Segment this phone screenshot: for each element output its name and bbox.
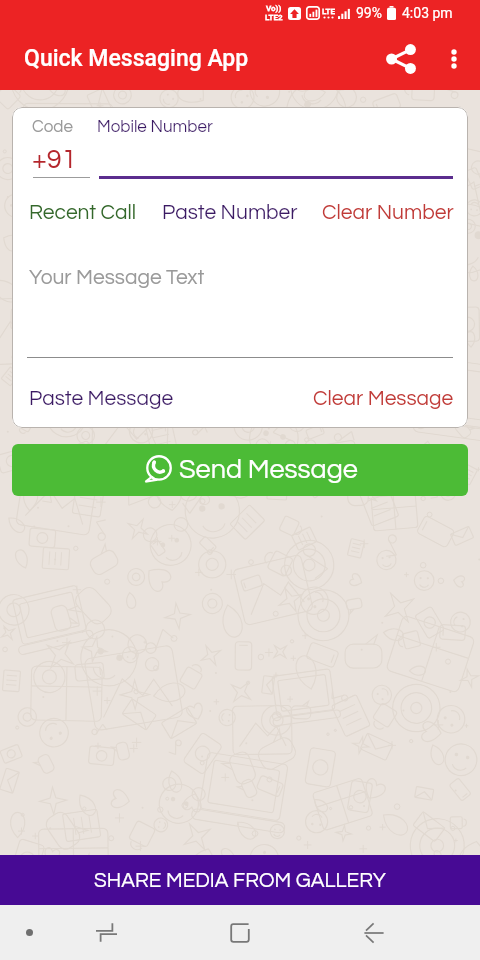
staticText: Quick Messaging App (24, 45, 249, 72)
button[interactable]: Send Message (12, 444, 468, 496)
button[interactable]: Paste Message (29, 379, 174, 419)
button[interactable]: Recent apps (76, 905, 136, 960)
button[interactable]: More options (434, 39, 474, 79)
button[interactable]: Recent Call (29, 193, 137, 233)
staticText: Code (32, 118, 73, 136)
button[interactable]: Mobile number field (99, 147, 453, 179)
staticText: 4:03 pm (402, 5, 453, 21)
button[interactable]: Assistant (6, 905, 52, 960)
staticText: Clear Message (313, 388, 454, 410)
staticText: Recent Call (29, 202, 137, 224)
staticText: Paste Number (162, 202, 298, 224)
button[interactable]: Country code field (33, 143, 90, 178)
staticText: SHARE MEDIA FROM GALLERY (94, 870, 387, 891)
staticText: Clear Number (322, 202, 454, 224)
staticText: LTE2 (265, 13, 283, 22)
button[interactable]: Share (377, 35, 425, 83)
staticText: Vo)) (266, 4, 282, 13)
button[interactable]: Clear Number (322, 193, 454, 233)
button[interactable]: Your Message Text (27, 257, 453, 357)
button[interactable]: Clear Message (313, 379, 454, 419)
staticText: Paste Message (29, 388, 174, 410)
staticText: +91 (32, 146, 77, 174)
button[interactable]: SHARE MEDIA FROM GALLERY (0, 855, 480, 905)
button[interactable]: Home (210, 905, 270, 960)
button[interactable]: Back (344, 905, 404, 960)
button[interactable]: Paste Number (162, 193, 298, 233)
staticText: Mobile Number (97, 118, 213, 136)
staticText: 99% (356, 5, 382, 21)
staticText: LTE (322, 7, 335, 16)
staticText: Send Message (179, 456, 358, 484)
staticText: Your Message Text (29, 267, 205, 289)
